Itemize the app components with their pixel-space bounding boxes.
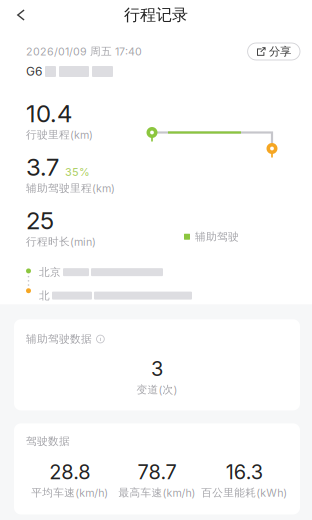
staticText: 北 [39,289,50,302]
staticText: 行程记录 [124,5,188,25]
staticText: 百公里能耗(kWh) [201,486,287,499]
staticText: 2026/01/09 周五 17:40 [26,45,142,58]
button[interactable]: 返回 [0,0,42,30]
staticText: G6 [26,64,42,79]
staticText: 行程时长(min) [26,235,96,248]
staticText: 25 [26,206,54,235]
staticText: 28.8 [49,460,90,484]
staticText: 最高车速(km/h) [118,486,195,499]
staticText: 北京 [39,265,61,279]
staticText: 分享 [269,44,291,59]
staticText: 3.7 [26,152,59,181]
staticText: 行驶里程(km) [26,128,93,141]
staticText: 辅助驾驶里程(km) [26,181,115,195]
staticText: 10.4 [26,99,72,128]
staticText: 16.3 [226,460,263,484]
staticText: 35% [65,166,90,178]
staticText: 平均车速(km/h) [31,486,108,499]
staticText: 变道(次) [136,383,177,396]
button[interactable]: 分享 [248,43,300,60]
staticText: 78.7 [137,460,176,484]
staticText: 驾驶数据 [26,434,70,448]
staticText: 辅助驾驶数据 [26,332,92,346]
staticText: 3 [151,357,163,381]
staticText: 辅助驾驶 [195,230,239,243]
